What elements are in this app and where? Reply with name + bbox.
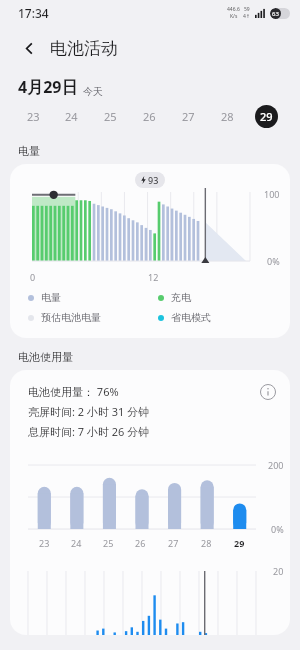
button[interactable]: 28 [208, 98, 247, 134]
staticText: 29 [234, 537, 245, 549]
staticText: 电池活动 [50, 38, 118, 59]
staticText: 100 [264, 188, 280, 200]
button[interactable]: 93 [10, 164, 290, 338]
staticText: 93 [148, 174, 159, 186]
staticText: 电池使用量 [18, 350, 73, 364]
staticText: 息屏时间: 7 小时 26 分钟 [28, 424, 150, 439]
staticText: 26 [143, 109, 156, 124]
staticText: 25 [104, 109, 117, 124]
button[interactable]: 信息 [258, 382, 278, 402]
button[interactable]: 电池使用量： 76% [10, 370, 290, 635]
staticText: 省电模式 [171, 311, 211, 324]
button[interactable]: 25 [91, 98, 130, 134]
staticText: 28 [201, 537, 212, 549]
staticText: 电池使用量： 76% [28, 384, 119, 399]
staticText: 59 [244, 6, 250, 13]
staticText: 23 [27, 109, 40, 124]
staticText: 28 [221, 109, 234, 124]
staticText: 4↑ [243, 13, 251, 20]
staticText: 20 [273, 565, 284, 577]
staticText: 200 [268, 459, 284, 471]
staticText: K/s [230, 13, 238, 20]
staticText: 24 [71, 537, 82, 549]
staticText: 充电 [171, 291, 191, 304]
button[interactable]: 24 [52, 98, 91, 134]
staticText: 0% [271, 523, 284, 535]
staticText: 23 [39, 537, 50, 549]
staticText: 27 [168, 537, 179, 549]
button[interactable]: 27 [169, 98, 208, 134]
staticText: 预估电池电量 [41, 311, 101, 324]
staticText: 25 [103, 537, 114, 549]
staticText: 27 [182, 109, 195, 124]
staticText: 今天 [83, 85, 103, 98]
staticText: 26 [135, 537, 146, 549]
staticText: 24 [65, 109, 78, 124]
button[interactable]: 29 [247, 98, 286, 134]
staticText: 12 [148, 271, 159, 283]
button[interactable]: 26 [130, 98, 169, 134]
staticText: 63 [272, 10, 279, 18]
staticText: 446.6 [227, 6, 240, 13]
staticText: 17:34 [18, 5, 49, 21]
staticText: 4月29日 [18, 76, 78, 98]
staticText: 0 [30, 271, 36, 283]
button[interactable]: 返回 [14, 33, 44, 63]
staticText: 0% [267, 255, 280, 267]
staticText: 电量 [18, 144, 40, 158]
button[interactable]: 23 [14, 98, 52, 134]
staticText: 29 [260, 109, 273, 124]
staticText: 电量 [41, 291, 61, 304]
staticText: 亮屏时间: 2 小时 31 分钟 [28, 404, 150, 419]
